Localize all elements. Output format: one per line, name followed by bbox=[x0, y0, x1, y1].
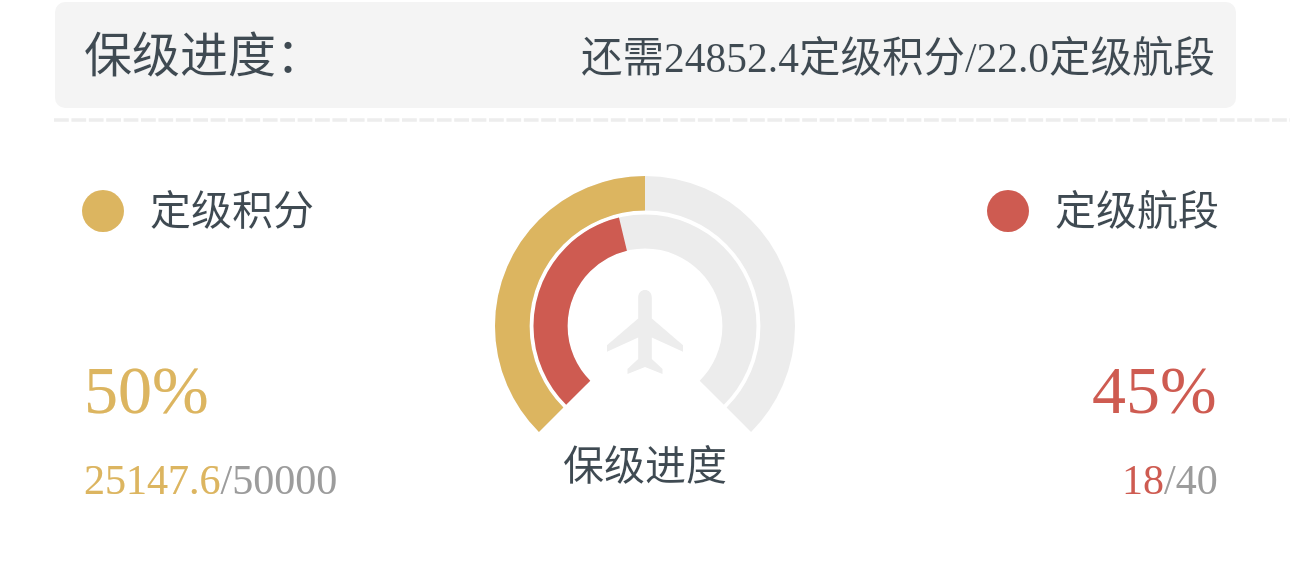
staticText: 45% bbox=[1092, 352, 1217, 427]
button[interactable]: 保级进度： bbox=[55, 2, 1236, 108]
staticText: 定级积分 bbox=[150, 177, 314, 235]
staticText: 25147.6/50000 bbox=[84, 457, 338, 504]
staticText: 定级航段 bbox=[1055, 177, 1219, 235]
staticText: 保级进度 bbox=[563, 432, 727, 491]
staticText: 保级进度： bbox=[84, 16, 325, 86]
staticText: 50% bbox=[84, 352, 209, 427]
button[interactable]: 定级航段 bbox=[987, 182, 1219, 240]
button[interactable]: 定级积分 bbox=[82, 182, 314, 240]
staticText: 还需24852.4定级积分/22.0定级航段 bbox=[581, 24, 1216, 84]
staticText: 18/40 bbox=[1122, 457, 1218, 504]
button[interactable]: 50% bbox=[84, 352, 338, 474]
button[interactable]: 45% bbox=[1092, 352, 1217, 474]
button[interactable]: 保级进度 50% / 45% progress gauge bbox=[493, 174, 797, 478]
